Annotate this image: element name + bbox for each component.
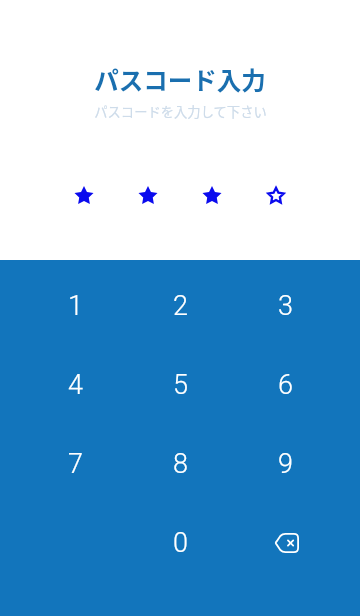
button[interactable]: 3 [240, 266, 360, 345]
staticText: 3 [278, 290, 293, 322]
button[interactable]: 6 [240, 345, 360, 424]
button[interactable]: Delete [240, 503, 360, 582]
staticText: 8 [173, 448, 188, 480]
staticText: 4 [68, 369, 83, 401]
staticText: 1 [68, 290, 83, 322]
button[interactable]: 7 [0, 424, 120, 503]
staticText: 2 [173, 290, 188, 322]
staticText: 9 [278, 448, 293, 480]
button[interactable]: 4 [0, 345, 120, 424]
other: Delete [274, 533, 299, 553]
button[interactable]: 9 [240, 424, 360, 503]
staticText: 0 [173, 527, 188, 559]
button[interactable]: 1 [0, 266, 120, 345]
staticText: パスコード入力 [94, 62, 266, 97]
button[interactable]: 5 [120, 345, 240, 424]
staticText: 6 [278, 369, 293, 401]
staticText: 7 [68, 448, 83, 480]
button[interactable]: 0 [120, 503, 240, 582]
staticText: パスコードを入力して下さい [94, 102, 267, 121]
button[interactable]: 8 [120, 424, 240, 503]
button[interactable]: 2 [120, 266, 240, 345]
staticText: 5 [173, 369, 188, 401]
